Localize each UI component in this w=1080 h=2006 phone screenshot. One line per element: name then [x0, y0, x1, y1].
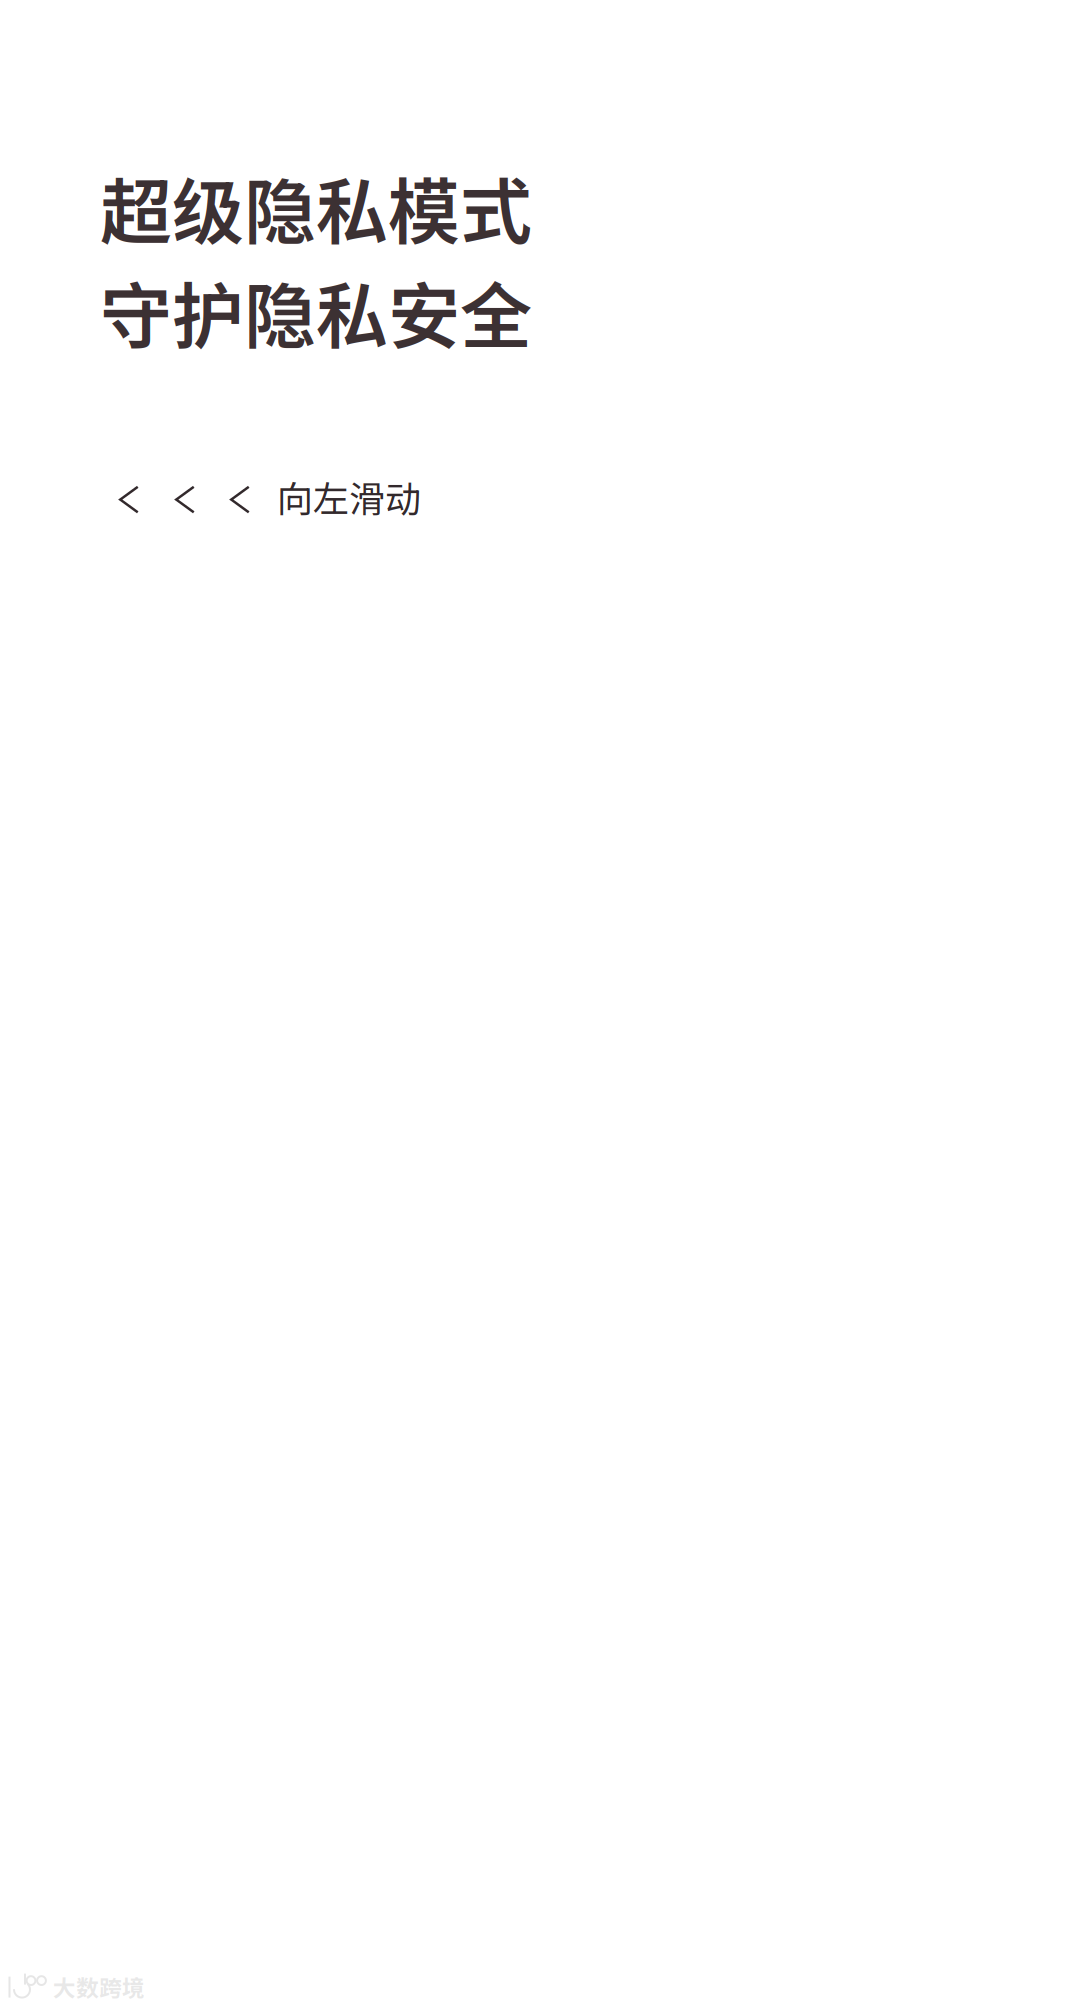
- staticText: 大数跨境: [53, 1970, 145, 2003]
- staticText: 超级隐私模式: [100, 155, 532, 259]
- staticText: 守护隐私安全: [100, 259, 532, 364]
- button[interactable]: 向左滑动: [0, 460, 445, 533]
- staticText: 向左滑动: [277, 470, 421, 523]
